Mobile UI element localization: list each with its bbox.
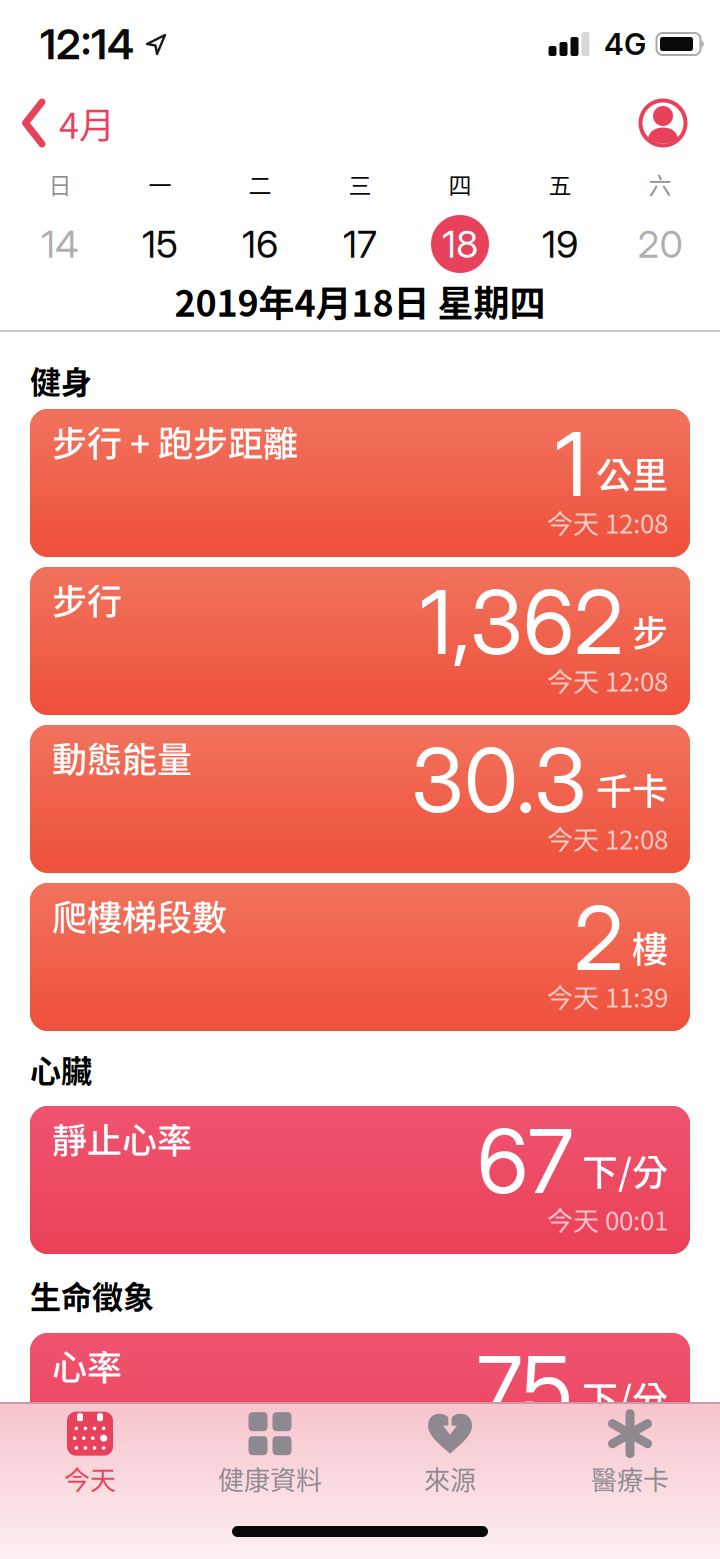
staticText: 心臟 [30, 1047, 92, 1091]
staticText: 靜止心率 [52, 1113, 192, 1164]
staticText: 動態能量 [52, 732, 192, 783]
staticText: 2 [574, 885, 623, 991]
staticText: 二 [248, 167, 271, 201]
button[interactable]: 今天 [0, 1406, 180, 1502]
button[interactable]: 15 [110, 206, 210, 282]
button[interactable]: 18 [410, 206, 510, 282]
staticText: 下/分 [582, 1144, 668, 1196]
staticText: 樓 [632, 921, 668, 973]
staticText: 30.3 [411, 727, 587, 833]
button[interactable]: 心率 [30, 1333, 690, 1481]
staticText: 今天 12:08 [547, 819, 668, 857]
staticText: 步行 + 跑步距離 [52, 416, 298, 467]
button[interactable]: 步行 [30, 567, 690, 715]
staticText: 4月 [59, 97, 115, 149]
button[interactable]: 來源 [360, 1406, 540, 1502]
button[interactable]: 健康資料 [180, 1406, 360, 1502]
staticText: 19 [542, 221, 578, 267]
button[interactable]: 步行 + 跑步距離 [30, 409, 690, 557]
staticText: 心率 [52, 1340, 122, 1391]
button[interactable] [638, 98, 720, 148]
button[interactable]: 16 [210, 206, 310, 282]
staticText: 三 [348, 167, 371, 201]
staticText: 步 [632, 605, 668, 657]
staticText: 生命徵象 [30, 1273, 154, 1317]
staticText: 五 [548, 167, 571, 201]
staticText: 20 [637, 221, 682, 267]
staticText: 今天 12:08 [547, 1427, 668, 1465]
button[interactable]: 14 [10, 206, 110, 282]
staticText: 醫療卡 [591, 1460, 669, 1497]
staticText: 18 [442, 221, 478, 267]
staticText: 今天 [64, 1460, 116, 1497]
staticText: 日 [48, 167, 71, 201]
staticText: 今天 11:39 [547, 977, 668, 1015]
button[interactable]: 動態能量 [30, 725, 690, 873]
staticText: 17 [343, 221, 377, 267]
staticText: 健康資料 [218, 1460, 322, 1497]
staticText: 下/分 [582, 1371, 668, 1423]
staticText: 16 [242, 221, 278, 267]
button[interactable]: 爬樓梯段數 [30, 883, 690, 1031]
staticText: 1,362 [420, 569, 623, 675]
staticText: 4G [604, 26, 646, 62]
button[interactable]: 4月 [0, 97, 115, 149]
staticText: 今天 12:08 [547, 661, 668, 699]
staticText: 75 [477, 1335, 573, 1441]
button[interactable]: 醫療卡 [540, 1406, 720, 1502]
staticText: 千卡 [596, 763, 668, 815]
staticText: 15 [142, 221, 178, 267]
staticText: 爬樓梯段數 [52, 890, 227, 941]
staticText: 六 [648, 167, 671, 201]
staticText: 12:14 [40, 19, 134, 69]
button[interactable]: 17 [310, 206, 410, 282]
staticText: 一 [148, 167, 171, 201]
staticText: 步行 [52, 574, 122, 625]
staticText: 公里 [596, 447, 668, 499]
staticText: 今天 00:01 [547, 1200, 668, 1238]
staticText: 1 [555, 411, 587, 517]
staticText: 今天 12:08 [547, 503, 668, 541]
staticText: 健身 [30, 358, 92, 402]
staticText: 14 [41, 221, 79, 267]
button[interactable]: 靜止心率 [30, 1106, 690, 1254]
button[interactable]: 20 [610, 206, 710, 282]
staticText: 來源 [424, 1460, 476, 1497]
staticText: 2019年4月18日 星期四 [174, 275, 545, 327]
button[interactable]: 19 [510, 206, 610, 282]
staticText: 67 [477, 1108, 573, 1214]
staticText: 四 [448, 167, 471, 201]
